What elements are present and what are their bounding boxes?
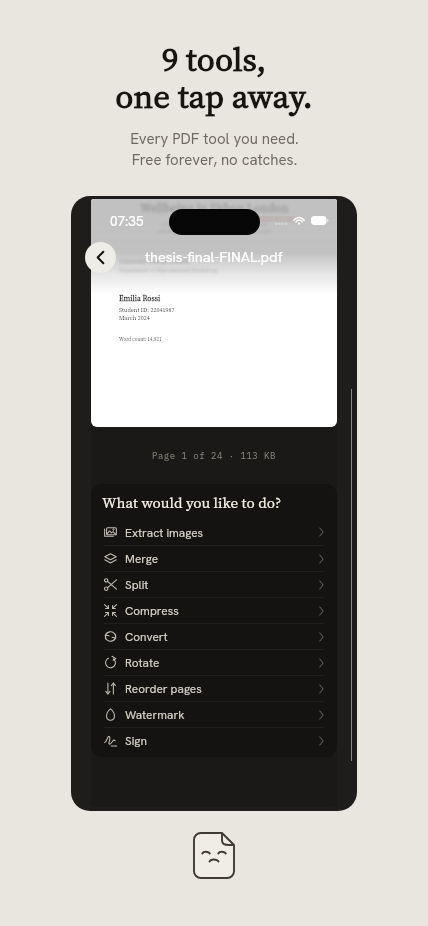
- staticText: Sign: [125, 733, 147, 748]
- staticText: March 2024: [119, 314, 150, 322]
- staticText: Rotate: [125, 655, 160, 670]
- button[interactable]: Merge: [104, 545, 324, 571]
- staticText: Extract images: [125, 525, 204, 540]
- staticText: What would you like to do?: [102, 492, 282, 513]
- staticText: A longitudinal analysis of green-space e…: [161, 221, 268, 228]
- staticText: Department of Experimental Psychology: [119, 266, 219, 274]
- staticText: and self-reported life satisfaction in i…: [157, 228, 272, 235]
- staticText: Page 1 of 24 · 113 KB: [152, 450, 276, 462]
- button[interactable]: Watermark: [104, 701, 324, 727]
- staticText: Word count: 14,821: [119, 336, 162, 343]
- button[interactable]: Rotate: [104, 649, 324, 675]
- button[interactable]: Reorder pages: [104, 675, 324, 701]
- staticText: 07:35: [110, 212, 144, 230]
- button[interactable]: Extract images: [104, 519, 324, 545]
- button[interactable]: Convert: [104, 623, 324, 649]
- staticText: 9 tools, one tap away.: [115, 37, 313, 120]
- staticText: thesis-final-FINAL.pdf: [145, 247, 283, 266]
- staticText: Every PDF tool you need. Free forever, n…: [130, 129, 299, 170]
- staticText: Compress: [125, 603, 179, 618]
- staticText: Emilia Rossi: [119, 293, 161, 303]
- staticText: Reorder pages: [125, 681, 202, 696]
- staticText: Watermark: [125, 707, 185, 722]
- button[interactable]: Back: [85, 242, 116, 273]
- staticText: Department of Experimental Psychology: [119, 266, 219, 274]
- staticText: University College London: [119, 257, 190, 265]
- staticText: University College London: [119, 257, 190, 265]
- staticText: Student ID: 22041987: [119, 306, 175, 314]
- staticText: and self-reported life satisfaction in i…: [157, 228, 272, 235]
- staticText: Merge: [125, 551, 159, 566]
- button[interactable]: Split: [104, 571, 324, 597]
- staticText: Split: [125, 577, 149, 592]
- button[interactable]: Compress: [104, 597, 324, 623]
- staticText: Wellbeing in Urban London: [140, 200, 289, 216]
- staticText: A longitudinal analysis of green-space e…: [161, 221, 268, 228]
- button[interactable]: Sign: [104, 727, 324, 753]
- staticText: Convert: [125, 629, 168, 644]
- staticText: Wellbeing in Urban London: [140, 200, 289, 216]
